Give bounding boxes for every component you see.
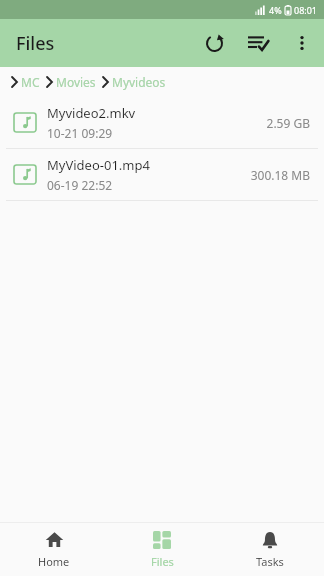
staticText: Files bbox=[16, 31, 55, 56]
staticText: 08:01 bbox=[294, 4, 318, 16]
button[interactable]: Myvideo2.mkv bbox=[0, 97, 324, 148]
button[interactable]: Movies bbox=[43, 74, 99, 90]
staticText: 10-21 09:29 bbox=[47, 125, 113, 141]
staticText: 06-19 22:52 bbox=[47, 177, 113, 193]
button[interactable]: Select bbox=[236, 21, 280, 65]
button[interactable]: Tasks bbox=[216, 523, 324, 576]
staticText: 2.59 GB bbox=[266, 115, 310, 131]
staticText: 4% bbox=[269, 4, 282, 16]
button[interactable]: Files bbox=[108, 523, 216, 576]
staticText: MyVideo-01.mp4 bbox=[47, 156, 150, 174]
staticText: Files bbox=[151, 554, 174, 569]
button[interactable]: Home bbox=[0, 523, 108, 576]
button[interactable]: Refresh bbox=[192, 21, 236, 65]
staticText: 300.18 MB bbox=[250, 167, 310, 183]
button[interactable]: More options bbox=[280, 21, 324, 65]
staticText: Home bbox=[38, 554, 70, 569]
staticText: Myvideos bbox=[112, 74, 166, 90]
staticText: MC bbox=[21, 74, 40, 90]
button[interactable]: Myvideos bbox=[99, 74, 169, 90]
button[interactable]: MC bbox=[8, 74, 43, 90]
staticText: Tasks bbox=[256, 554, 284, 569]
staticText: Movies bbox=[56, 74, 96, 90]
staticText: Myvideo2.mkv bbox=[47, 104, 136, 122]
button[interactable]: MyVideo-01.mp4 bbox=[0, 149, 324, 200]
